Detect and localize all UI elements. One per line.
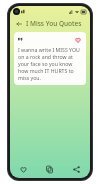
button[interactable]: Back	[14, 19, 24, 29]
button[interactable]: Favorite	[10, 160, 36, 178]
button[interactable]: Favorite	[14, 32, 86, 85]
staticText: I Miss You Quotes	[26, 19, 82, 28]
button[interactable]: Favorite	[73, 35, 82, 44]
button[interactable]: Share	[63, 160, 90, 178]
button[interactable]: Copy	[36, 160, 63, 178]
staticText: I wanna write I MISS YOU on a rock and t…	[18, 46, 82, 81]
